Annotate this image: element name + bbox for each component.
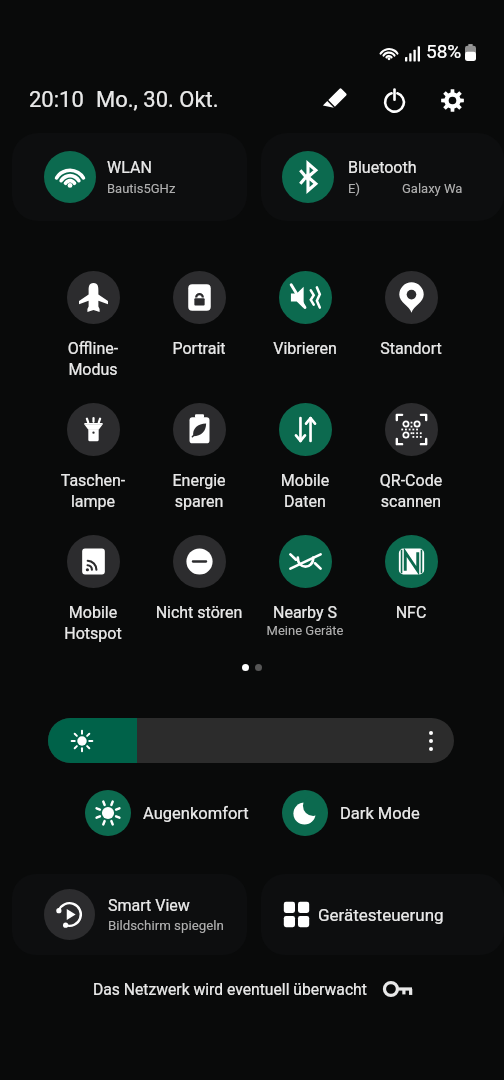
- staticText: Nearby S: [252, 603, 358, 622]
- staticText: Portrait: [146, 339, 252, 358]
- button[interactable]: Ausschalten: [372, 78, 416, 122]
- staticText: Meine Geräte: [252, 623, 358, 638]
- button[interactable]: Augenkomfort: [85, 790, 249, 836]
- staticText: Gerätesteuerung: [318, 905, 444, 925]
- button[interactable]: Bearbeiten: [313, 78, 357, 122]
- staticText: 58%: [426, 40, 462, 62]
- staticText: Mobile Daten: [252, 471, 358, 511]
- staticText: Energie sparen: [146, 471, 252, 511]
- button[interactable]: Gerätesteuerung: [261, 874, 504, 955]
- staticText: Augenkomfort: [143, 804, 249, 823]
- button[interactable]: Smart View: [12, 874, 247, 955]
- staticText: NFC: [358, 603, 464, 622]
- button[interactable]: Mobile Daten: [252, 403, 358, 511]
- button[interactable]: Portrait: [146, 271, 252, 358]
- staticText: QR-Code scannen: [358, 471, 464, 511]
- button[interactable]: Bluetooth: [261, 133, 504, 221]
- staticText: Taschen- lampe: [40, 471, 146, 511]
- button[interactable]: Mobile Hotspot: [40, 535, 146, 643]
- staticText: Dark Mode: [340, 804, 420, 823]
- button[interactable]: Nicht stören: [146, 535, 252, 622]
- button[interactable]: Dark Mode: [282, 790, 420, 836]
- button[interactable]: Einstellungen: [430, 78, 474, 122]
- staticText: E): [348, 181, 360, 196]
- staticText: Mobile Hotspot: [40, 603, 146, 643]
- staticText: Offline- Modus: [40, 339, 146, 379]
- staticText: 20:10: [29, 87, 84, 113]
- staticText: Bildschirm spiegeln: [108, 918, 224, 934]
- staticText: Mo., 30. Okt.: [96, 87, 219, 113]
- staticText: Bluetooth: [348, 158, 417, 177]
- button[interactable]: Energie sparen: [146, 403, 252, 511]
- button[interactable]: Taschen- lampe: [40, 403, 146, 511]
- staticText: Nicht stören: [146, 603, 252, 622]
- staticText: Standort: [358, 339, 464, 358]
- button[interactable]: QR-Code scannen: [358, 403, 464, 511]
- button[interactable]: Standort: [358, 271, 464, 358]
- staticText: Bautis5GHz: [107, 181, 176, 196]
- button[interactable]: Vibrieren: [252, 271, 358, 358]
- button[interactable]: Helligkeit: [48, 718, 454, 763]
- button[interactable]: Nearby S: [252, 535, 358, 638]
- staticText: Smart View: [108, 896, 190, 915]
- button[interactable]: WLAN: [12, 133, 247, 221]
- staticText: WLAN: [107, 158, 152, 177]
- staticText: Galaxy Wa: [402, 181, 463, 196]
- staticText: Das Netzwerk wird eventuell überwacht: [93, 980, 367, 998]
- staticText: Vibrieren: [252, 339, 358, 358]
- button[interactable]: NFC: [358, 535, 464, 622]
- button[interactable]: Offline- Modus: [40, 271, 146, 379]
